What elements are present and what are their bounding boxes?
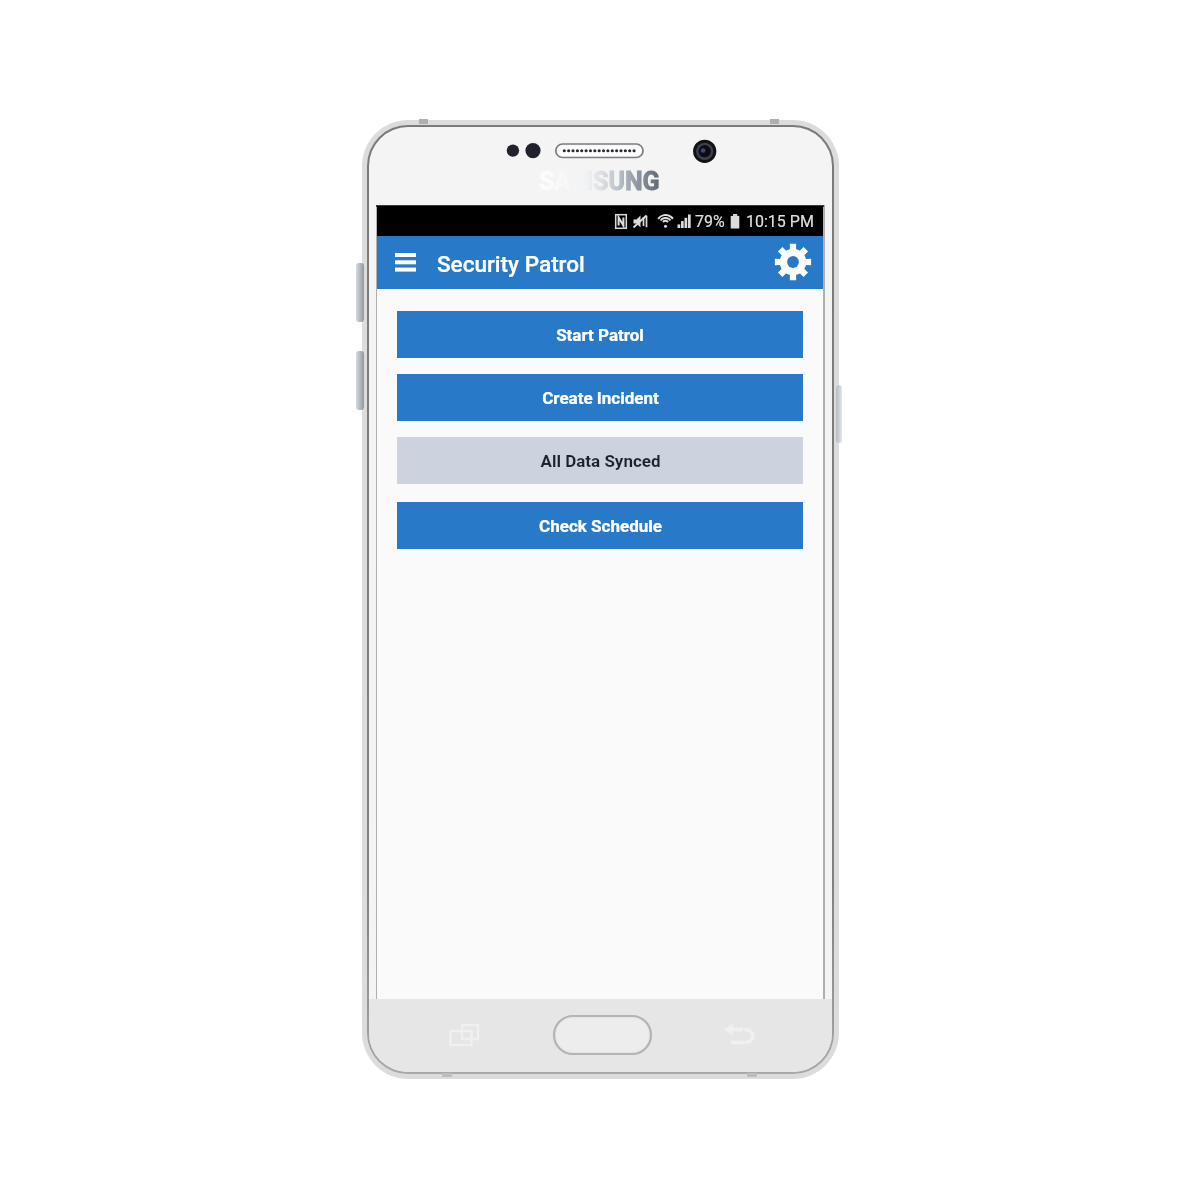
- staticText: All Data Synced: [540, 451, 661, 471]
- staticText: Start Patrol: [556, 325, 644, 345]
- staticText: Create Incident: [542, 388, 659, 408]
- button[interactable]: Create Incident: [397, 374, 803, 421]
- staticText: Check Schedule: [539, 516, 662, 536]
- button[interactable]: All Data Synced: [397, 437, 803, 484]
- button[interactable]: Check Schedule: [397, 502, 803, 549]
- button[interactable]: Settings: [771, 240, 815, 284]
- staticText: SAMSUNG: [539, 167, 660, 196]
- staticText: 79%: [695, 212, 725, 231]
- staticText: 10:15 PM: [746, 212, 814, 231]
- button[interactable]: Open navigation menu: [388, 245, 422, 279]
- staticText: Security Patrol: [437, 251, 585, 277]
- button[interactable]: Start Patrol: [397, 311, 803, 358]
